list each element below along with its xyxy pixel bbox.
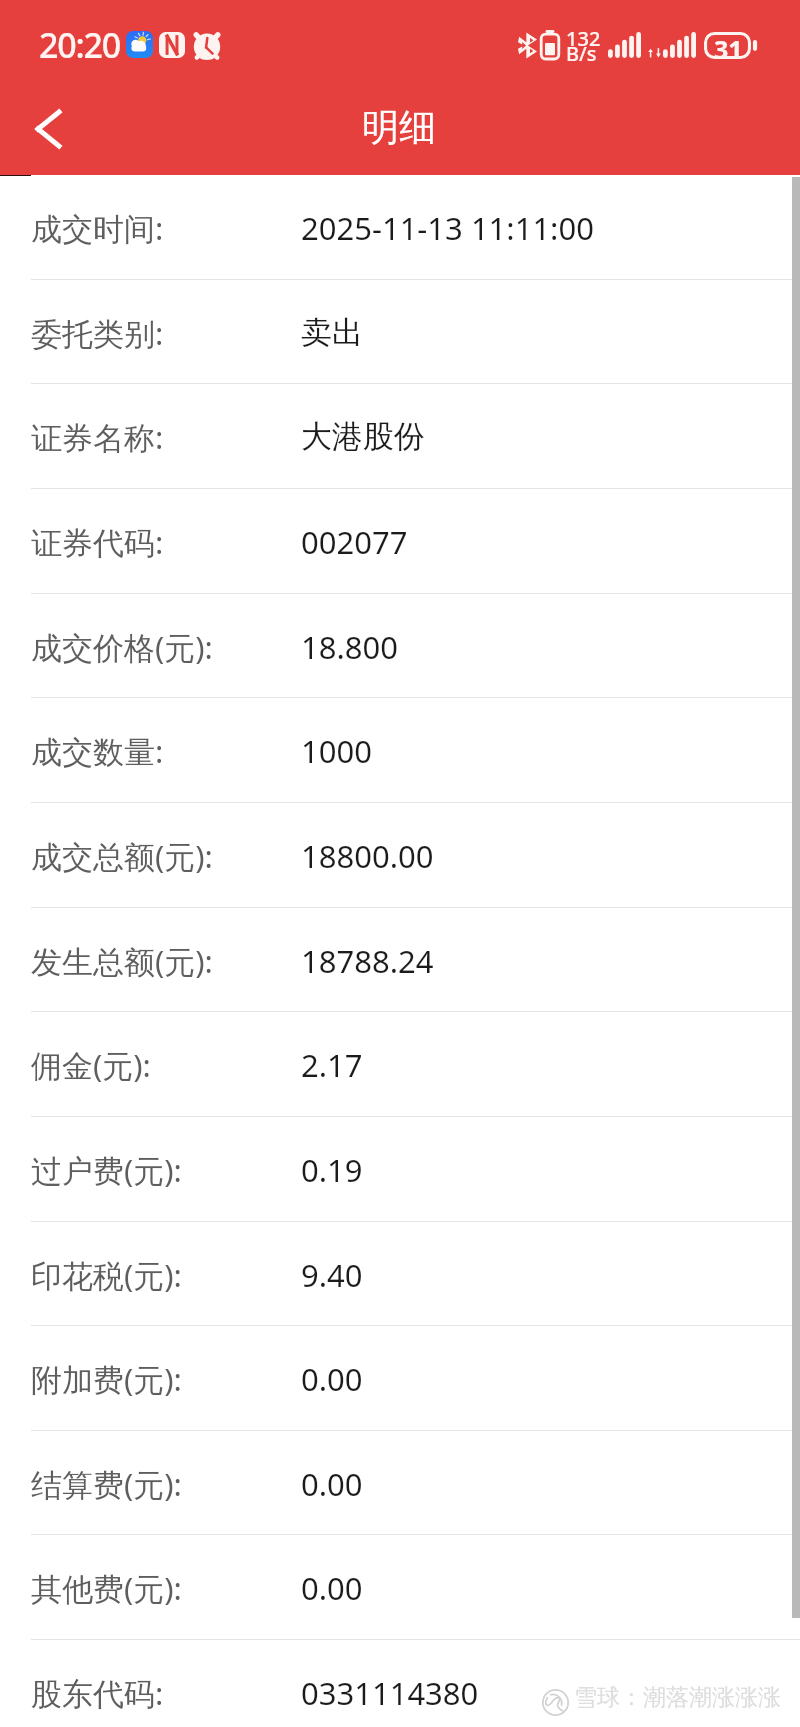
button[interactable]: 过户费(元):	[0, 1117, 800, 1222]
staticText: 其他费(元):	[31, 1567, 182, 1609]
staticText: 大港股份	[301, 417, 425, 456]
button[interactable]: 委托类别:	[0, 280, 800, 385]
staticText: 132	[566, 25, 601, 52]
staticText: 雪球：潮落潮涨涨涨	[574, 1683, 781, 1712]
staticText: 2.17	[301, 1044, 363, 1086]
staticText: 20:20	[39, 22, 121, 68]
staticText: 成交时间:	[31, 207, 164, 249]
staticText: 印花税(元):	[31, 1254, 182, 1296]
button[interactable]: Back	[10, 95, 86, 171]
staticText: 0.00	[301, 1358, 363, 1400]
button[interactable]: 证券名称:	[0, 384, 800, 489]
staticText: 成交总额(元):	[31, 835, 213, 877]
staticText: 18.800	[301, 626, 398, 668]
button[interactable]: 成交价格(元):	[0, 594, 800, 699]
staticText: 0.00	[301, 1463, 363, 1505]
staticText: B/s	[566, 40, 597, 67]
staticText: 0331114380	[301, 1672, 479, 1714]
button[interactable]: 结算费(元):	[0, 1431, 800, 1536]
staticText: 9.40	[301, 1254, 363, 1296]
button[interactable]: 印花税(元):	[0, 1222, 800, 1327]
button[interactable]: 附加费(元):	[0, 1326, 800, 1431]
staticText: 证券代码:	[31, 521, 164, 563]
staticText: 过户费(元):	[31, 1149, 182, 1191]
button[interactable]: 成交时间:	[0, 175, 800, 280]
staticText: 0.00	[301, 1567, 363, 1609]
staticText: 31	[714, 32, 743, 66]
staticText: 18800.00	[301, 835, 434, 877]
button[interactable]: 发生总额(元):	[0, 908, 800, 1013]
staticText: 委托类别:	[31, 312, 164, 354]
staticText: 附加费(元):	[31, 1358, 182, 1400]
button[interactable]: 其他费(元):	[0, 1535, 800, 1640]
button[interactable]: 证券代码:	[0, 489, 800, 594]
staticText: 结算费(元):	[31, 1463, 182, 1505]
staticText: 发生总额(元):	[31, 940, 213, 982]
staticText: 佣金(元):	[31, 1044, 151, 1086]
staticText: 卖出	[301, 313, 363, 352]
staticText: 2025-11-13 11:11:00	[301, 207, 594, 249]
staticText: 明细	[362, 104, 436, 151]
staticText: 证券名称:	[31, 416, 164, 458]
staticText: 002077	[301, 521, 408, 563]
staticText: 成交数量:	[31, 730, 164, 772]
button[interactable]: 成交总额(元):	[0, 803, 800, 908]
staticText: 成交价格(元):	[31, 626, 213, 668]
button[interactable]: 股东代码:	[0, 1640, 800, 1727]
staticText: 18788.24	[301, 940, 434, 982]
staticText: 0.19	[301, 1149, 363, 1191]
button[interactable]: 成交数量:	[0, 698, 800, 803]
staticText: 1000	[301, 730, 372, 772]
button[interactable]: 佣金(元):	[0, 1012, 800, 1117]
staticText: 股东代码:	[31, 1672, 164, 1714]
